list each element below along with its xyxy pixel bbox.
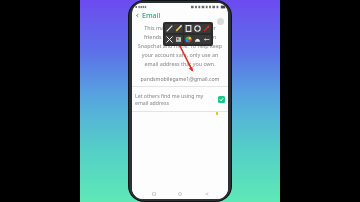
button[interactable]: Undo: [202, 35, 211, 44]
staticText: This makes it easier for your friends to…: [137, 24, 223, 67]
button[interactable]: Highlighter: [174, 24, 183, 33]
button[interactable]: Settings: [217, 18, 224, 25]
button[interactable]: Ellipse: [193, 24, 202, 33]
button[interactable]: Arrow: [202, 24, 211, 33]
button[interactable]: Back: [132, 10, 228, 21]
other: Enabled: [218, 96, 225, 103]
staticText: Email: [142, 11, 161, 21]
button[interactable]: Crop: [165, 35, 174, 44]
button[interactable]: Recents: [149, 189, 159, 199]
other: Back: [135, 13, 140, 18]
staticText: Let others find me using my email addres…: [135, 92, 216, 107]
button[interactable]: Home: [175, 189, 185, 199]
button[interactable]: Colour: [184, 35, 193, 44]
button[interactable]: Blur: [174, 35, 183, 44]
button[interactable]: Stamp: [193, 35, 202, 44]
button[interactable]: Back: [202, 189, 212, 199]
button[interactable]: Pen: [165, 24, 174, 33]
staticText: pandsmobilegame1@gmail.com: [132, 75, 228, 82]
button[interactable]: Let others find me using my email addres…: [132, 91, 228, 108]
button[interactable]: Rectangle: [184, 24, 193, 33]
